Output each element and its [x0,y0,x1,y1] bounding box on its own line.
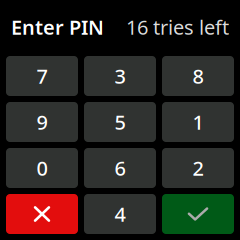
staticText: 4 [114,201,125,227]
staticText: 16 tries left [126,14,229,40]
staticText: 0 [36,155,47,181]
staticText: Enter PIN [11,14,104,40]
button[interactable]: Confirm [162,194,234,234]
staticText: 3 [114,63,125,89]
button[interactable]: 4 [84,194,156,234]
button[interactable]: 1 [162,102,234,142]
button[interactable]: 7 [6,56,78,96]
staticText: 1 [192,109,203,135]
button[interactable]: 2 [162,148,234,188]
staticText: 6 [114,155,125,181]
button[interactable]: 6 [84,148,156,188]
button[interactable]: 3 [84,56,156,96]
button[interactable]: Cancel [6,194,78,234]
button[interactable]: 5 [84,102,156,142]
staticText: 7 [36,63,47,89]
staticText: 5 [114,109,125,135]
button[interactable]: 0 [6,148,78,188]
staticText: 8 [192,63,203,89]
button[interactable]: 8 [162,56,234,96]
staticText: 9 [36,109,47,135]
staticText: 2 [192,155,203,181]
button[interactable]: 9 [6,102,78,142]
